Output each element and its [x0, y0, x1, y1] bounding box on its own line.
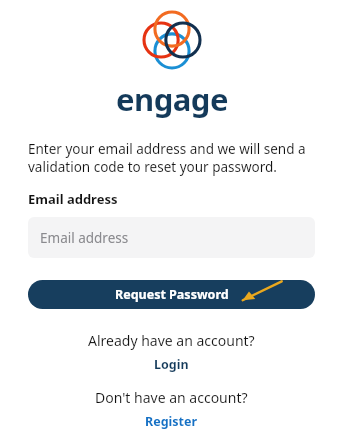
staticText: Email address: [40, 229, 129, 247]
staticText: Enter your email address and we will sen…: [28, 140, 321, 176]
button[interactable]: Register: [137, 411, 206, 432]
other: Arrow pointing to Request Password: [241, 280, 283, 302]
staticText: engage: [116, 78, 228, 120]
staticText: Already have an account?: [88, 331, 255, 350]
staticText: Email address: [28, 190, 118, 208]
staticText: Login: [154, 356, 189, 373]
staticText: Don't have an account?: [95, 388, 248, 407]
staticText: Register: [145, 413, 198, 430]
button[interactable]: Login: [146, 354, 197, 375]
button[interactable]: Email address: [28, 217, 315, 258]
staticText: Request Password: [115, 286, 229, 303]
button[interactable]: Request Password: [28, 280, 315, 309]
